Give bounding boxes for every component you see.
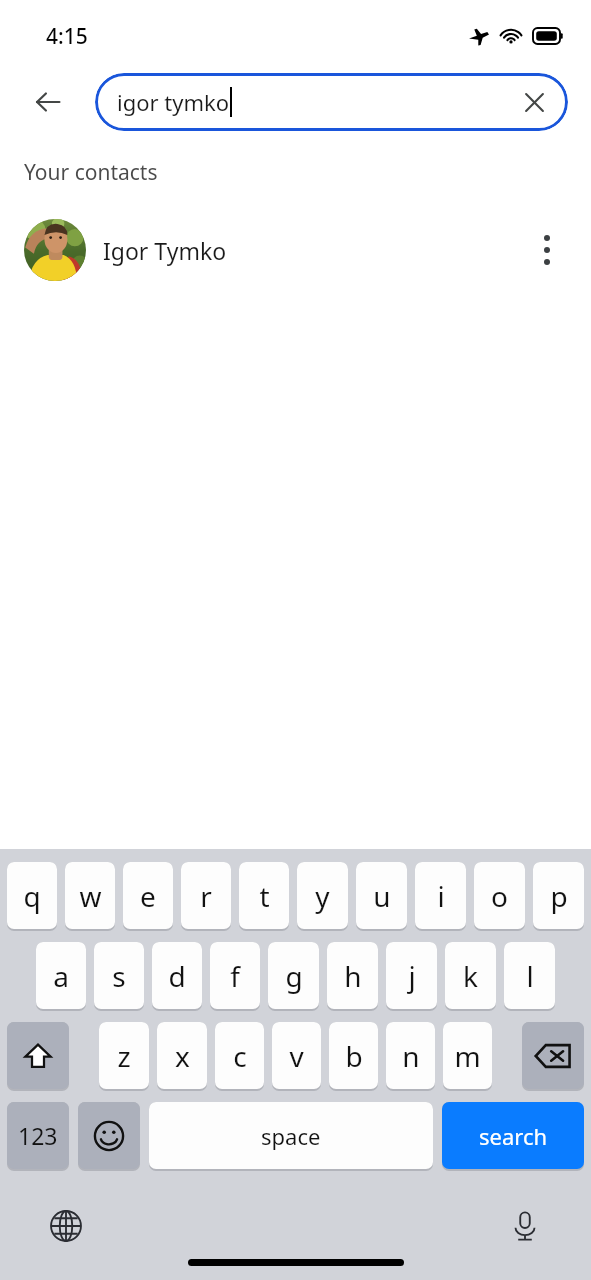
button[interactable]: Clear search [514, 82, 554, 122]
staticText: space [261, 1121, 321, 1151]
staticText: a [53, 957, 69, 995]
button[interactable]: x [157, 1022, 207, 1089]
button[interactable]: u [356, 862, 407, 929]
staticText: g [285, 957, 303, 995]
staticText: o [491, 877, 508, 915]
button[interactable]: f [210, 942, 260, 1009]
staticText: d [168, 957, 186, 995]
staticText: y [315, 877, 330, 915]
button[interactable]: c [215, 1022, 264, 1089]
button[interactable]: d [152, 942, 202, 1009]
staticText: z [117, 1037, 131, 1075]
button[interactable]: n [386, 1022, 435, 1089]
button[interactable]: y [297, 862, 348, 929]
button[interactable]: Back [0, 72, 95, 132]
button[interactable]: t [239, 862, 289, 929]
staticText: f [230, 957, 240, 995]
staticText: c [233, 1037, 247, 1075]
staticText: b [345, 1037, 363, 1075]
staticText: Igor Tymko [103, 235, 227, 266]
button[interactable]: s [94, 942, 144, 1009]
staticText: v [289, 1037, 304, 1075]
button[interactable]: Backspace [522, 1022, 584, 1089]
button[interactable]: k [445, 942, 496, 1009]
button[interactable]: e [123, 862, 173, 929]
button[interactable]: q [7, 862, 57, 929]
button[interactable]: Voice input [501, 1202, 549, 1250]
staticText: x [175, 1037, 190, 1075]
button[interactable]: g [268, 942, 319, 1009]
button[interactable]: space [149, 1102, 433, 1169]
button[interactable]: z [99, 1022, 149, 1089]
button[interactable]: Change language [42, 1202, 90, 1250]
button[interactable]: b [329, 1022, 378, 1089]
staticText: search [479, 1121, 548, 1151]
button[interactable]: j [386, 942, 437, 1009]
button[interactable]: i [415, 862, 466, 929]
button[interactable]: search [442, 1102, 584, 1169]
staticText: l [526, 957, 534, 995]
staticText: m [454, 1037, 481, 1075]
button[interactable]: w [65, 862, 115, 929]
staticText: igor tymko [117, 87, 230, 117]
button[interactable]: Shift [7, 1022, 69, 1089]
button[interactable]: m [443, 1022, 492, 1089]
button[interactable]: r [181, 862, 231, 929]
staticText: h [344, 957, 362, 995]
button[interactable]: 123 [7, 1102, 69, 1169]
button[interactable]: p [533, 862, 584, 929]
staticText: w [79, 877, 102, 915]
staticText: n [402, 1037, 420, 1075]
button[interactable]: More options [519, 222, 575, 278]
staticText: p [550, 877, 568, 915]
staticText: t [259, 877, 270, 915]
staticText: j [408, 957, 416, 995]
staticText: 4:15 [46, 22, 88, 51]
staticText: u [373, 877, 391, 915]
staticText: e [140, 877, 156, 915]
button[interactable]: h [327, 942, 378, 1009]
button[interactable]: o [474, 862, 525, 929]
button[interactable]: Igor Tymko [0, 215, 591, 285]
staticText: i [437, 877, 445, 915]
staticText: Your contacts [24, 158, 158, 187]
button[interactable]: a [36, 942, 86, 1009]
staticText: k [463, 957, 478, 995]
staticText: 123 [18, 1120, 58, 1151]
button[interactable]: v [272, 1022, 321, 1089]
button[interactable]: igor tymko [95, 73, 568, 131]
button[interactable]: Emoji [78, 1102, 140, 1169]
button[interactable]: l [504, 942, 555, 1009]
staticText: s [112, 957, 126, 995]
staticText: r [200, 877, 212, 915]
staticText: q [23, 877, 41, 915]
